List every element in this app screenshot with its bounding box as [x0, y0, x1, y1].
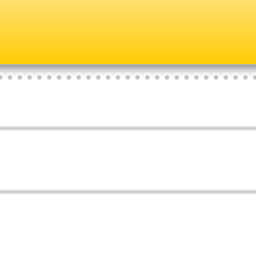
button[interactable]: Note body: [0, 64, 256, 256]
button[interactable]: Note title: [0, 0, 256, 64]
